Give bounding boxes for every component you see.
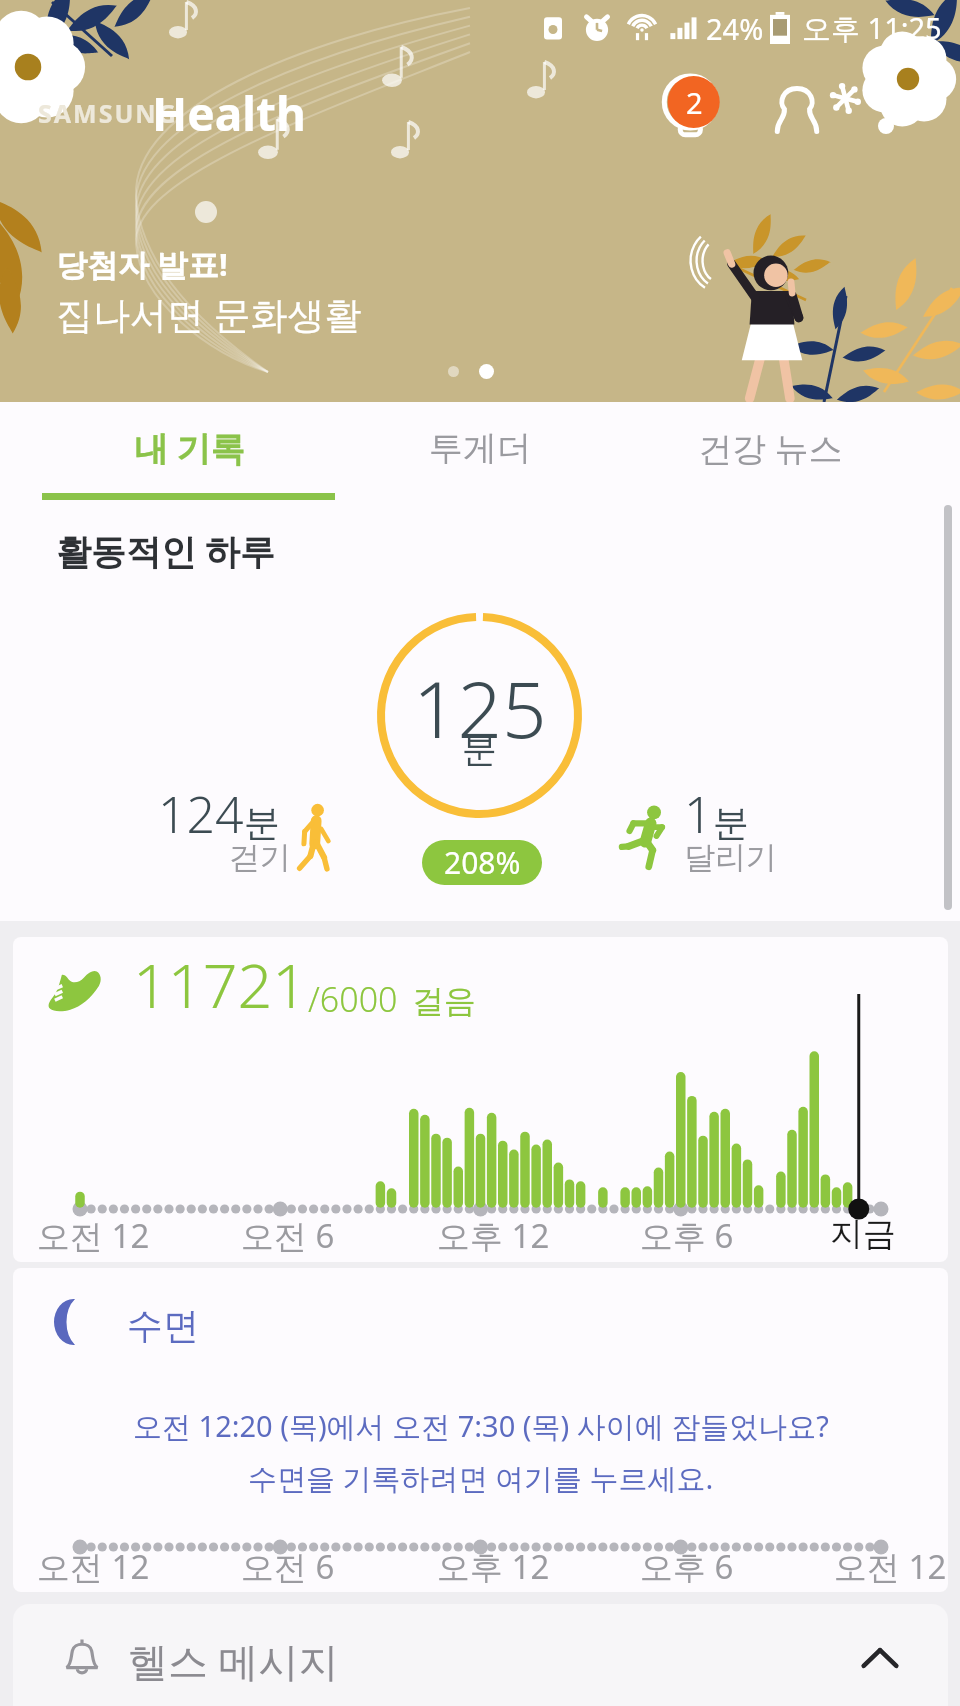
staticText: 오전 12 bbox=[834, 1544, 947, 1589]
staticText: 수면을 기록하려면 여기를 누르세요. bbox=[248, 1458, 714, 1498]
button[interactable]: 11721 bbox=[13, 937, 948, 1262]
staticText: 지금 bbox=[830, 1213, 896, 1255]
staticText: 분 bbox=[244, 800, 280, 845]
button[interactable]: 헬스 메시지 bbox=[13, 1604, 948, 1706]
staticText: 집나서면 문화생활 bbox=[56, 288, 362, 339]
staticText: 오전 12 bbox=[37, 1213, 150, 1258]
staticText: 125 bbox=[413, 655, 547, 761]
staticText: 11721 bbox=[133, 943, 308, 1026]
staticText: 오후 12 bbox=[437, 1544, 550, 1589]
staticText: 124 bbox=[158, 780, 244, 848]
staticText: 달리기 bbox=[684, 838, 777, 877]
staticText: 분 bbox=[462, 727, 497, 771]
staticText: /6000 bbox=[308, 976, 398, 1022]
staticText: 걷기 bbox=[229, 838, 291, 877]
button[interactable]: 내 기록 bbox=[44, 402, 334, 500]
staticText: 내 기록 bbox=[134, 425, 245, 471]
staticText: 오후 6 bbox=[640, 1544, 734, 1589]
button[interactable]: 건강 뉴스 bbox=[625, 402, 916, 500]
button[interactable]: Notifications bbox=[650, 60, 734, 144]
button[interactable]: 활동적인 하루 bbox=[0, 500, 960, 921]
button[interactable]: 수면 bbox=[13, 1268, 948, 1592]
staticText: 2 bbox=[686, 83, 703, 122]
button[interactable]: 투게더 bbox=[334, 402, 625, 500]
staticText: 활동적인 하루 bbox=[56, 527, 276, 575]
staticText: 헬스 메시지 bbox=[128, 1633, 339, 1688]
staticText: 걸음 bbox=[412, 981, 476, 1021]
staticText: 오후 12 bbox=[437, 1213, 550, 1258]
staticText: 오전 12:20 (목)에서 오전 7:30 (목) 사이에 잠들었나요? bbox=[133, 1406, 829, 1446]
button[interactable]: More options bbox=[822, 76, 872, 126]
button[interactable]: Expand health messages bbox=[856, 1634, 904, 1682]
staticText: Health bbox=[152, 82, 306, 145]
staticText: 오전 12 bbox=[37, 1544, 150, 1589]
staticText: 오전 6 bbox=[241, 1213, 335, 1258]
staticText: 건강 뉴스 bbox=[698, 425, 843, 471]
staticText: 208% bbox=[444, 842, 521, 883]
staticText: 오후 6 bbox=[640, 1213, 734, 1258]
staticText: SAMSUNG bbox=[38, 96, 178, 130]
staticText: 당첨자 발표! bbox=[56, 243, 228, 285]
staticText: 투게더 bbox=[429, 427, 531, 470]
staticText: 1 bbox=[684, 780, 713, 848]
staticText: 분 bbox=[713, 800, 749, 845]
staticText: 오전 6 bbox=[241, 1544, 335, 1589]
staticText: 오후 11:25 bbox=[802, 8, 942, 48]
button[interactable]: Profile bbox=[762, 75, 832, 145]
staticText: 수면 bbox=[127, 1303, 199, 1348]
staticText: 24% bbox=[706, 9, 764, 48]
